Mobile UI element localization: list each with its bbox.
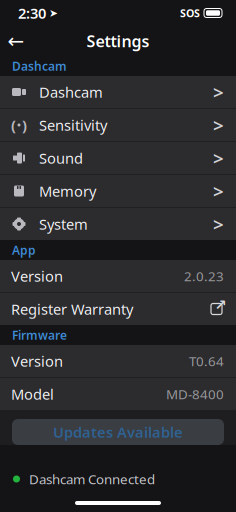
staticText: > bbox=[213, 212, 224, 236]
staticText: ➤ bbox=[49, 7, 58, 19]
staticText: > bbox=[213, 146, 224, 170]
button[interactable]: Memory bbox=[0, 175, 236, 207]
button[interactable]: Updates Available bbox=[12, 419, 224, 445]
staticText: 2:30 bbox=[18, 3, 46, 23]
staticText: Memory bbox=[39, 181, 96, 201]
staticText: Firmware bbox=[12, 327, 67, 343]
staticText: 2.0.23 bbox=[184, 267, 224, 285]
button[interactable]: Dashcam bbox=[0, 76, 236, 108]
staticText: T0.64 bbox=[189, 352, 224, 370]
staticText: ( bbox=[11, 115, 16, 135]
staticText: Dashcam bbox=[39, 82, 103, 102]
staticText: Updates Available bbox=[53, 422, 183, 442]
staticText: > bbox=[213, 80, 224, 104]
staticText: Model bbox=[11, 384, 54, 404]
staticText: MD-8400 bbox=[166, 385, 224, 403]
button[interactable]: ( bbox=[0, 109, 236, 141]
staticText: ← bbox=[7, 30, 24, 52]
staticText: Sensitivity bbox=[39, 115, 107, 135]
staticText: Version bbox=[11, 266, 63, 286]
button[interactable]: Back bbox=[0, 27, 32, 55]
staticText: Register Warranty bbox=[11, 299, 133, 319]
staticText: ) bbox=[22, 115, 27, 135]
staticText: Dashcam Connected bbox=[29, 470, 155, 488]
staticText: Dashcam bbox=[12, 58, 67, 74]
button[interactable]: Sound bbox=[0, 142, 236, 174]
staticText: Settings bbox=[86, 30, 149, 52]
staticText: Version bbox=[11, 351, 63, 371]
staticText: > bbox=[213, 179, 224, 203]
button[interactable]: Register Warranty bbox=[0, 293, 236, 325]
staticText: > bbox=[213, 113, 224, 137]
staticText: Sound bbox=[39, 148, 83, 168]
staticText: App bbox=[12, 242, 36, 258]
staticText: ↗ bbox=[214, 297, 226, 313]
button[interactable]: System bbox=[0, 208, 236, 240]
staticText: System bbox=[39, 214, 88, 234]
staticText: SOS bbox=[180, 6, 200, 20]
